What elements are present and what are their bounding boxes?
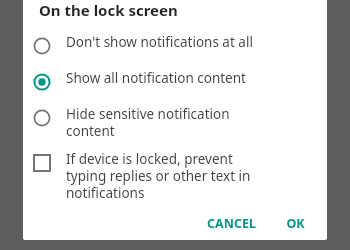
- staticText: OK: [286, 215, 305, 232]
- button[interactable]: CANCEL: [199, 209, 264, 238]
- button[interactable]: Show all notification content: [23, 65, 327, 101]
- staticText: Hide sensitive notification content: [66, 105, 230, 140]
- staticText: Show all notification content: [66, 69, 246, 87]
- staticText: On the lock screen: [39, 0, 178, 20]
- button[interactable]: Hide sensitive notification content: [23, 101, 327, 147]
- staticText: CANCEL: [207, 215, 256, 232]
- button[interactable]: OK: [278, 209, 313, 238]
- staticText: Don't show notifications at all: [66, 33, 253, 51]
- button[interactable]: If device is locked, prevent typing repl…: [23, 147, 327, 207]
- staticText: If device is locked, prevent typing repl…: [66, 150, 251, 202]
- button[interactable]: Don't show notifications at all: [23, 29, 327, 65]
